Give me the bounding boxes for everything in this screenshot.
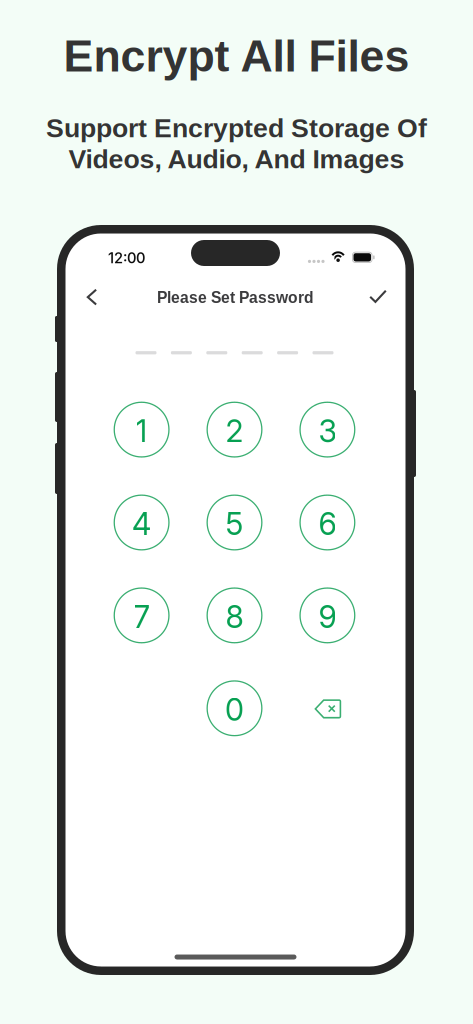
staticText: 12:00 [108,249,145,267]
button[interactable]: 8 [206,587,262,643]
staticText: 7 [134,598,150,635]
staticText: Encrypt All Files [63,31,409,81]
staticText: 5 [225,506,243,542]
button[interactable]: Back [77,279,106,315]
staticText: 4 [132,506,151,542]
button[interactable]: 4 [114,494,170,550]
staticText: Videos, Audio, And Images [68,144,404,174]
staticText: 0 [225,691,244,728]
button[interactable]: 0 [206,680,262,736]
button[interactable]: 6 [299,494,355,550]
button[interactable]: 3 [299,402,355,458]
staticText: 2 [225,413,243,449]
staticText: Support Encrypted Storage Of [46,113,427,143]
staticText: Please Set Password [157,289,314,306]
button[interactable]: 2 [206,402,262,458]
staticText: 1 [136,413,148,449]
staticText: 8 [225,598,243,635]
button[interactable]: 9 [299,587,355,643]
button[interactable]: 5 [206,494,262,550]
button[interactable]: 7 [114,587,170,643]
button[interactable]: Delete [299,680,355,736]
staticText: 6 [318,506,336,542]
staticText: 3 [318,413,336,449]
button[interactable]: 1 [114,402,170,458]
button[interactable]: Confirm [360,280,396,312]
staticText: 9 [318,598,336,635]
